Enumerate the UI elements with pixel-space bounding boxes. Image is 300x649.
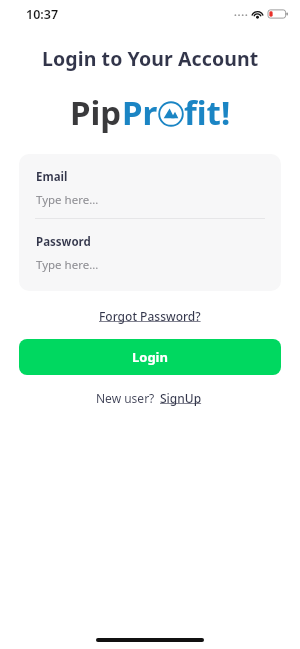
staticText: 10:37 <box>26 6 59 23</box>
staticText: New user? <box>96 390 158 406</box>
button[interactable]: Forgot Password? <box>93 305 207 327</box>
staticText: Forgot Password? <box>99 308 201 324</box>
staticText: Pr <box>122 90 158 135</box>
button[interactable]: Email <box>19 154 281 218</box>
staticText: Type here... <box>36 257 99 273</box>
button[interactable]: Login <box>19 339 281 375</box>
staticText: Login <box>132 348 168 366</box>
staticText: SignUp <box>160 390 202 406</box>
staticText: Email <box>36 169 68 185</box>
button[interactable]: Password <box>19 219 281 283</box>
staticText: fit! <box>184 90 231 135</box>
staticText: Pip <box>70 90 122 135</box>
staticText: Password <box>36 234 91 250</box>
staticText: Type here... <box>36 192 99 208</box>
staticText: Login to Your Account <box>42 45 259 72</box>
button[interactable]: SignUp <box>158 388 204 408</box>
